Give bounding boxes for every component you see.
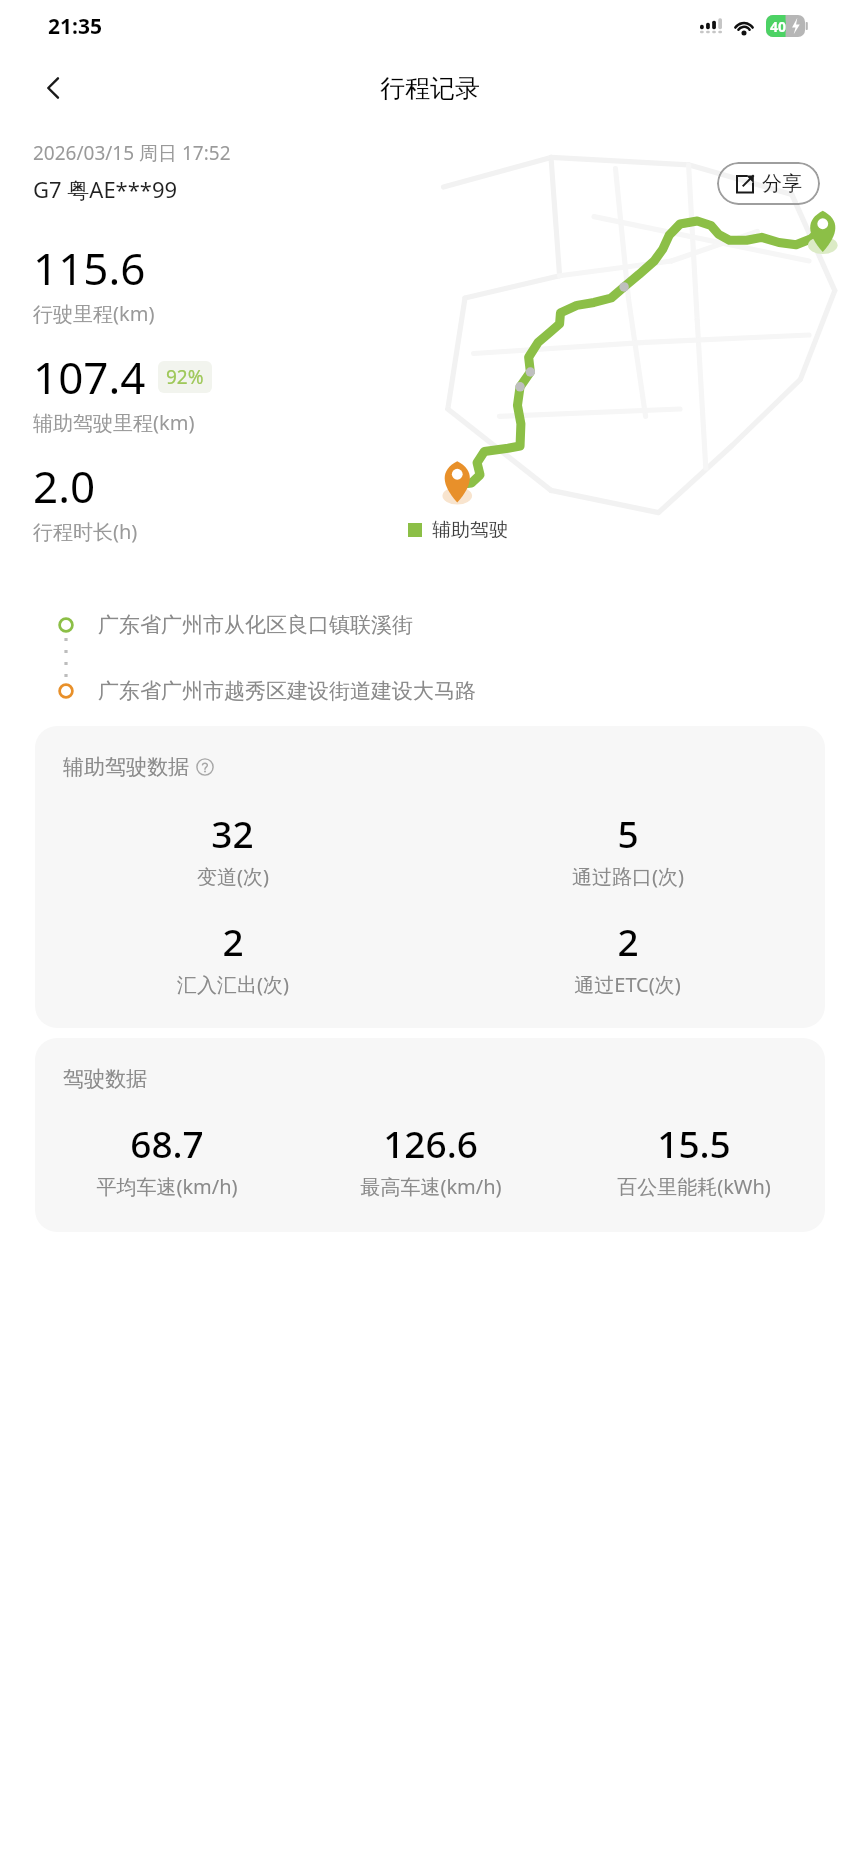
- staticText: 辅助驾驶: [432, 518, 508, 542]
- staticText: 平均车速(km/h): [96, 1173, 238, 1200]
- staticText: 辅助驾驶数据: [63, 754, 189, 780]
- staticText: 21:35: [48, 12, 102, 41]
- staticText: 最高车速(km/h): [360, 1173, 502, 1200]
- staticText: 68.7: [130, 1118, 204, 1168]
- staticText: 107.4: [33, 347, 146, 407]
- staticText: 2: [617, 916, 639, 966]
- staticText: G7 粤AE***99: [33, 174, 178, 204]
- staticText: 5: [617, 808, 639, 858]
- staticText: 广东省广州市从化区良口镇联溪街: [98, 612, 413, 638]
- button[interactable]: Back: [28, 62, 80, 114]
- staticText: 分享: [762, 171, 802, 196]
- staticText: 行程时长(h): [33, 518, 138, 545]
- staticText: 32: [211, 808, 254, 858]
- staticText: 92%: [166, 364, 204, 390]
- staticText: 驾驶数据: [63, 1066, 147, 1092]
- staticText: 辅助驾驶里程(km): [33, 409, 195, 436]
- staticText: 通过路口(次): [572, 863, 684, 890]
- button[interactable]: 驾驶数据: [35, 1038, 825, 1232]
- staticText: 2.0: [33, 456, 96, 516]
- staticText: 汇入汇出(次): [177, 971, 289, 998]
- staticText: 40: [770, 17, 787, 36]
- staticText: 126.6: [383, 1118, 478, 1168]
- staticText: 15.5: [657, 1118, 731, 1168]
- staticText: 2: [222, 916, 244, 966]
- staticText: 行驶里程(km): [33, 300, 155, 327]
- button[interactable]: 分享: [717, 162, 820, 205]
- button[interactable]: 辅助驾驶数据: [35, 726, 825, 1028]
- staticText: 115.6: [33, 238, 146, 298]
- staticText: 百公里能耗(kWh): [617, 1173, 771, 1200]
- staticText: 2026/03/15 周日 17:52: [33, 140, 231, 166]
- staticText: 广东省广州市越秀区建设街道建设大马路: [98, 678, 476, 704]
- staticText: 通过ETC(次): [574, 971, 681, 998]
- staticText: 行程记录: [380, 73, 480, 104]
- staticText: 变道(次): [197, 863, 269, 890]
